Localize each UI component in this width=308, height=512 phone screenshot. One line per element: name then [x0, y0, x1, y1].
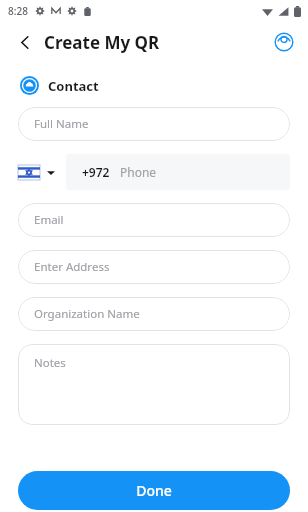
- staticText: Organization Name: [34, 306, 140, 322]
- staticText: Phone: [120, 164, 157, 180]
- staticText: +972: [82, 164, 110, 180]
- button[interactable]: Account: [269, 27, 299, 57]
- button[interactable]: Full Name: [18, 107, 290, 141]
- button[interactable]: Back: [10, 27, 40, 57]
- button[interactable]: Enter Address: [18, 250, 290, 284]
- button[interactable]: Organization Name: [18, 297, 290, 331]
- button[interactable]: Done: [18, 471, 290, 510]
- staticText: 8:28: [8, 4, 28, 18]
- staticText: Enter Address: [34, 259, 110, 275]
- staticText: Done: [136, 481, 172, 500]
- button[interactable]: Email: [18, 203, 290, 237]
- staticText: Contact: [48, 77, 99, 95]
- button[interactable]: Contact: [20, 76, 99, 95]
- staticText: Notes: [34, 355, 66, 371]
- button[interactable]: +972: [66, 154, 290, 190]
- button[interactable]: Select country code: [18, 165, 55, 180]
- button[interactable]: Notes: [18, 344, 290, 425]
- staticText: Create My QR: [44, 31, 160, 54]
- staticText: Email: [34, 212, 64, 228]
- staticText: Full Name: [34, 116, 89, 132]
